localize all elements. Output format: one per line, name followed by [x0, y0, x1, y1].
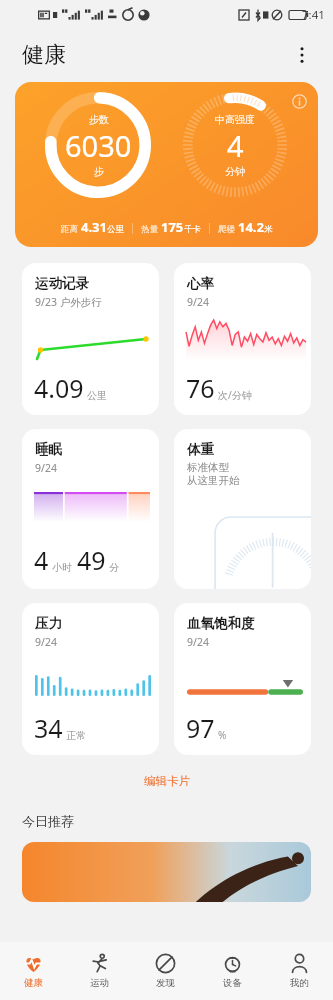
staticText: 76	[186, 371, 215, 405]
staticText: 175	[161, 218, 184, 236]
button[interactable]: 运动	[66, 942, 132, 1000]
staticText: 4	[227, 126, 244, 165]
button[interactable]: Info	[15, 82, 318, 247]
staticText: 49	[77, 543, 106, 577]
staticText: 从这里开始	[187, 474, 240, 487]
staticText: 健康	[22, 41, 66, 69]
button[interactable]: 编辑卡片	[0, 771, 333, 791]
staticText: 9/24	[35, 461, 57, 475]
staticText: 编辑卡片	[144, 774, 190, 788]
staticText: %	[218, 728, 227, 742]
staticText: 爬楼	[218, 224, 235, 235]
button[interactable]: More options	[285, 38, 319, 72]
button[interactable]: 发现	[132, 942, 199, 1000]
staticText: 分钟	[225, 165, 245, 178]
staticText: 34	[34, 711, 63, 745]
staticText: 健康	[24, 977, 43, 989]
staticText: 体重	[187, 441, 214, 458]
staticText: 步	[94, 165, 104, 178]
staticText: 距离	[61, 224, 78, 235]
button[interactable]: 心率	[174, 263, 311, 415]
staticText: 千卡	[184, 224, 201, 235]
button[interactable]: 睡眠	[22, 429, 159, 589]
staticText: 睡眠	[35, 441, 62, 458]
staticText: 心率	[187, 275, 214, 292]
button[interactable]: 压力	[22, 603, 159, 755]
staticText: 分	[109, 561, 119, 574]
staticText: 中高强度	[215, 113, 255, 126]
staticText: 9/24	[35, 635, 57, 649]
button[interactable]: 血氧饱和度	[174, 603, 311, 755]
button[interactable]	[22, 842, 311, 902]
staticText: 发现	[156, 977, 175, 989]
staticText: 9/23 户外步行	[35, 295, 102, 309]
staticText: 公里	[87, 389, 107, 402]
staticText: 次/分钟	[218, 388, 252, 402]
staticText: 米	[264, 224, 273, 235]
staticText: 设备	[223, 977, 242, 989]
staticText: 公里	[107, 224, 124, 235]
button[interactable]: 设备	[199, 942, 266, 1000]
staticText: 4.09	[34, 371, 84, 405]
button[interactable]: 健康	[0, 942, 66, 1000]
staticText: 小时	[52, 561, 72, 574]
staticText: 4.31	[81, 218, 107, 236]
staticText: 步数	[89, 113, 109, 126]
staticText: 9/24	[187, 635, 209, 649]
button[interactable]: 运动记录	[22, 263, 159, 415]
staticText: 14.2	[238, 218, 264, 236]
staticText: 正常	[66, 729, 86, 742]
staticText: 血氧饱和度	[187, 615, 255, 632]
staticText: 97	[186, 711, 215, 745]
staticText: 运动	[90, 977, 109, 989]
staticText: 我的	[290, 977, 309, 989]
staticText: 9/24	[187, 295, 209, 309]
staticText: 标准体型	[187, 461, 229, 474]
staticText: 4	[34, 543, 49, 577]
staticText: 7:41	[302, 7, 325, 23]
button[interactable]: Info	[285, 87, 313, 115]
staticText: 6030	[65, 126, 132, 165]
button[interactable]: 体重	[174, 429, 311, 589]
staticText: 运动记录	[35, 275, 89, 292]
staticText: 今日推荐	[22, 813, 74, 829]
staticText: 热量	[141, 224, 158, 235]
button[interactable]: 我的	[266, 942, 333, 1000]
staticText: 压力	[35, 615, 62, 632]
